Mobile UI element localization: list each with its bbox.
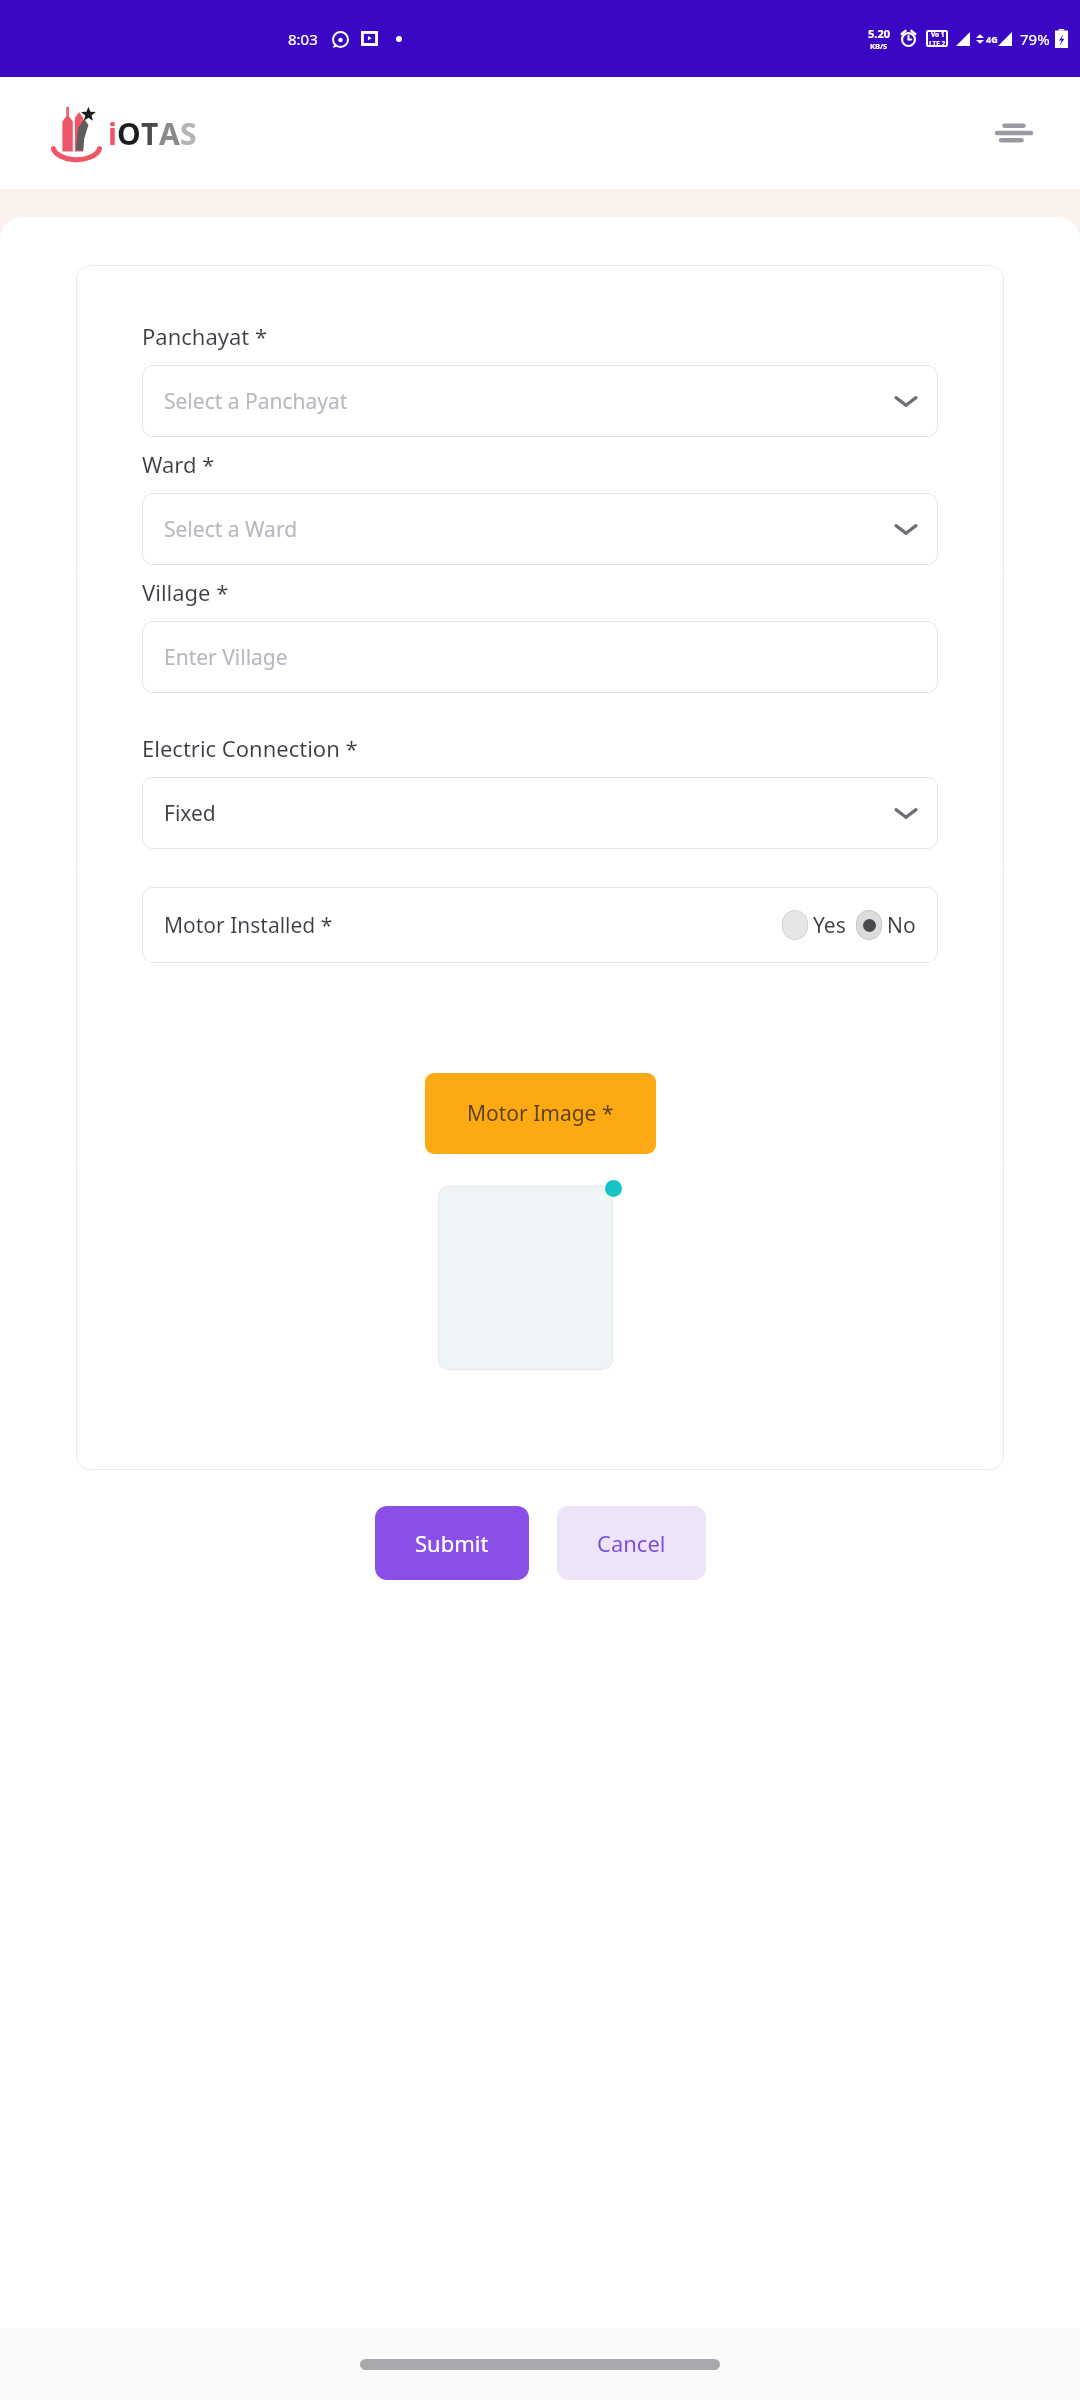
button[interactable]: Enter Village [142,621,938,693]
button[interactable]: Cancel [557,1506,706,1580]
button[interactable]: Motor Image * [425,1073,656,1154]
staticText: Vo 1 [931,30,945,39]
staticText: Yes [813,911,846,940]
button[interactable]: Motor image preview [438,1186,613,1370]
button[interactable]: Remove image [605,1180,622,1197]
staticText: Motor Image * [467,1099,614,1128]
staticText: 8:03 [288,29,318,49]
staticText: Panchayat * [142,321,268,351]
staticText: Electric Connection * [142,733,358,763]
button[interactable]: Submit [375,1506,529,1580]
staticText: T [141,113,159,154]
staticText: Ward * [142,449,215,479]
staticText: Fixed [164,799,896,828]
staticText: O [117,113,141,154]
staticText: Select a Panchayat [164,387,896,416]
staticText: 4G [986,33,998,45]
staticText: i [108,113,117,154]
staticText: S [180,113,197,154]
button[interactable]: Select a Ward [142,493,938,565]
staticText: LTE 2 [929,39,946,47]
staticText: 5.20 [868,26,890,41]
staticText: 79% [1020,29,1050,49]
staticText: KB/S [870,41,888,51]
staticText: Motor Installed * [164,911,782,940]
staticText: Select a Ward [164,515,896,544]
staticText: Village * [142,577,229,607]
staticText: A [159,113,180,154]
staticText: Enter Village [164,643,916,672]
button[interactable]: Fixed [142,777,938,849]
button[interactable]: No [856,910,916,940]
button[interactable]: Yes [782,910,846,940]
button[interactable]: Menu [988,107,1040,159]
button[interactable]: Select a Panchayat [142,365,938,437]
staticText: Cancel [597,1528,666,1558]
staticText: No [887,911,916,940]
staticText: Submit [415,1528,489,1558]
